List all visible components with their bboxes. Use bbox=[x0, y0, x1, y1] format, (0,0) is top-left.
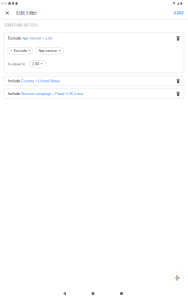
button[interactable]: Back bbox=[50, 287, 78, 300]
button[interactable]: Close bbox=[1, 7, 13, 19]
staticText: Session campaign = Flood-it ACe test bbox=[21, 91, 83, 96]
staticText bbox=[21, 36, 22, 40]
staticText: Exclude bbox=[8, 36, 21, 40]
staticText: 11:41 bbox=[1, 2, 7, 5]
button[interactable]: Delete condition bbox=[175, 90, 181, 97]
staticText: Apply bbox=[173, 11, 183, 15]
staticText: Include bbox=[8, 91, 20, 96]
staticText: 2.00 bbox=[32, 62, 39, 66]
button[interactable]: Include bbox=[4, 76, 184, 86]
staticText: Exclude bbox=[14, 49, 27, 53]
button[interactable]: Add condition bbox=[169, 270, 184, 285]
staticText bbox=[20, 91, 21, 96]
staticText: App version < 2.00 bbox=[22, 36, 52, 40]
staticText: Edit Filter bbox=[16, 10, 37, 16]
staticText: Include bbox=[8, 79, 20, 83]
button[interactable]: Exclude bbox=[8, 47, 33, 54]
button[interactable]: App version bbox=[36, 47, 63, 54]
staticText: App version bbox=[38, 49, 57, 53]
button[interactable]: 2.00 bbox=[29, 60, 45, 67]
button[interactable]: Recent apps bbox=[107, 287, 135, 300]
button[interactable]: Home bbox=[79, 287, 107, 300]
staticText: CONDITIONS (UP TO 5) bbox=[4, 24, 37, 27]
staticText bbox=[20, 79, 21, 83]
button[interactable]: Delete condition bbox=[175, 77, 181, 85]
staticText: Is equal to bbox=[8, 62, 25, 66]
button[interactable]: Delete condition bbox=[175, 34, 181, 42]
button[interactable]: Apply bbox=[171, 7, 185, 19]
staticText: Country = United States bbox=[21, 79, 60, 83]
button[interactable]: Include bbox=[4, 89, 184, 99]
